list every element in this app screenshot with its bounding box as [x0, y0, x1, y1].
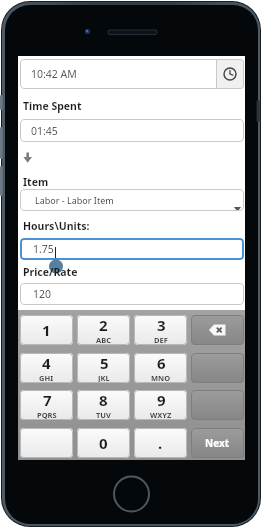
staticText: PQRS: [37, 410, 57, 420]
staticText: Next: [205, 436, 230, 450]
staticText: Item: [23, 175, 49, 189]
button[interactable]: 3: [134, 315, 187, 345]
staticText: 5: [100, 353, 109, 373]
staticText: ABC: [96, 335, 111, 345]
button[interactable]: 120: [20, 283, 244, 305]
staticText: WXYZ: [150, 410, 172, 420]
staticText: Labor - Labor Item: [35, 194, 114, 206]
button[interactable]: 2: [77, 315, 130, 345]
staticText: .: [158, 433, 163, 453]
staticText: DEF: [154, 335, 168, 345]
staticText: Time Spent: [23, 99, 82, 113]
staticText: 1: [42, 320, 51, 340]
button[interactable]: 8: [77, 390, 130, 420]
staticText: 120: [33, 287, 52, 301]
button[interactable]: 6: [134, 353, 187, 383]
button[interactable]: 7: [20, 390, 73, 420]
button[interactable]: 0: [77, 428, 130, 458]
staticText: 1.75: [33, 242, 54, 256]
staticText: 0: [99, 433, 108, 453]
button[interactable]: 1: [20, 315, 73, 345]
button[interactable]: [191, 315, 244, 345]
staticText: JKL: [98, 373, 110, 383]
staticText: 2: [99, 315, 108, 335]
staticText: TUV: [96, 410, 111, 420]
staticText: 10:42 AM: [31, 67, 77, 81]
button[interactable]: 01:45: [20, 119, 244, 142]
button[interactable]: [216, 59, 244, 89]
button[interactable]: [191, 390, 244, 420]
staticText: 9: [157, 390, 166, 410]
staticText: 01:45: [31, 124, 58, 138]
staticText: Price/Rate: [23, 265, 78, 279]
staticText: 3: [157, 315, 166, 335]
staticText: 7: [43, 390, 52, 410]
button[interactable]: 10:42 AM: [20, 59, 244, 89]
staticText: 6: [157, 353, 166, 373]
staticText: MNO: [151, 373, 171, 383]
button[interactable]: Next: [191, 428, 244, 458]
staticText: Hours\Units:: [23, 219, 90, 233]
button[interactable]: Labor - Labor Item: [20, 189, 244, 211]
button[interactable]: [20, 428, 73, 458]
button[interactable]: 1.75: [20, 238, 244, 260]
button[interactable]: 5: [77, 353, 130, 383]
staticText: 4: [42, 353, 51, 373]
button[interactable]: [191, 353, 244, 383]
button[interactable]: 4: [20, 353, 73, 383]
staticText: 8: [99, 390, 108, 410]
button[interactable]: .: [134, 428, 187, 458]
button[interactable]: 9: [134, 390, 187, 420]
staticText: GHI: [39, 373, 54, 383]
